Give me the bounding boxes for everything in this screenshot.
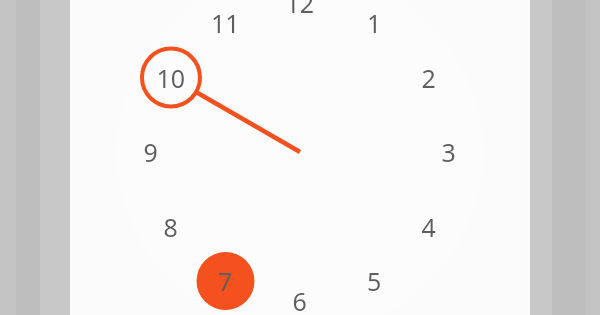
button[interactable]: Selected hour 10 (142, 47, 200, 105)
button[interactable]: Clock face, pick hour (117, 0, 483, 284)
